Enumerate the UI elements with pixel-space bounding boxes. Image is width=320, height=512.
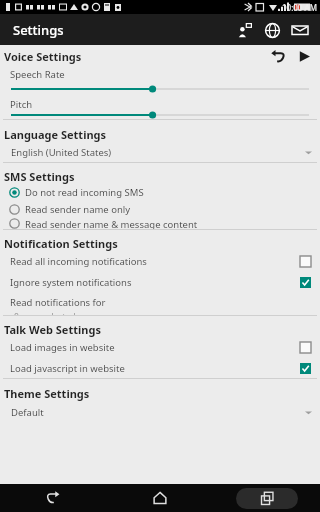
staticText: Voice Settings — [4, 49, 82, 64]
staticText: Language Settings — [4, 127, 107, 142]
staticText: Ignore system notifications — [10, 276, 132, 289]
button[interactable]: Ignore system notifications — [0, 272, 320, 293]
button[interactable]: Default — [0, 401, 320, 423]
staticText: English (United States) — [11, 146, 112, 159]
button[interactable]: Email — [286, 16, 314, 44]
staticText: SMS Settings — [4, 169, 75, 184]
button[interactable]: Reset — [264, 45, 292, 67]
staticText: Read sender name & message content — [25, 218, 198, 229]
staticText: 10:00 AM — [282, 2, 317, 13]
staticText: Talk Web Settings — [4, 322, 101, 337]
button[interactable]: Read all incoming notifications — [0, 251, 320, 272]
button[interactable]: Read sender name & message content — [0, 218, 320, 229]
button[interactable]: Read sender name only — [0, 201, 320, 218]
button[interactable]: Load images in website — [0, 337, 320, 358]
button[interactable]: Contacts — [230, 16, 258, 44]
staticText: Read notifications for — [10, 296, 106, 309]
button[interactable]: Home — [106, 484, 213, 512]
button[interactable]: Speech Rate — [0, 67, 320, 97]
button[interactable]: Back — [0, 484, 106, 512]
button[interactable]: English (United States) — [0, 142, 320, 162]
staticText: Read sender name only — [25, 203, 131, 216]
staticText: Settings — [13, 21, 64, 39]
button[interactable]: Recent apps — [213, 484, 320, 512]
staticText: Notification Settings — [4, 236, 118, 251]
staticText: Pitch — [10, 98, 33, 111]
staticText: Do not read incoming SMS — [25, 186, 144, 199]
staticText: Load javascript in website — [10, 362, 125, 375]
button[interactable]: Play — [292, 45, 316, 67]
button[interactable]: Do not read incoming SMS — [0, 184, 320, 201]
button[interactable]: Language — [258, 16, 286, 44]
staticText: Read all incoming notifications — [10, 255, 147, 268]
staticText: Speech Rate — [10, 68, 65, 81]
staticText: Load images in website — [10, 341, 115, 354]
button[interactable]: Pitch — [0, 97, 320, 119]
staticText: Theme Settings — [4, 386, 90, 401]
button[interactable]: Load javascript in website — [0, 358, 320, 378]
staticText: Default — [11, 406, 44, 419]
button[interactable]: Read notifications for — [0, 293, 320, 315]
staticText: 0 apps selected — [14, 311, 76, 315]
